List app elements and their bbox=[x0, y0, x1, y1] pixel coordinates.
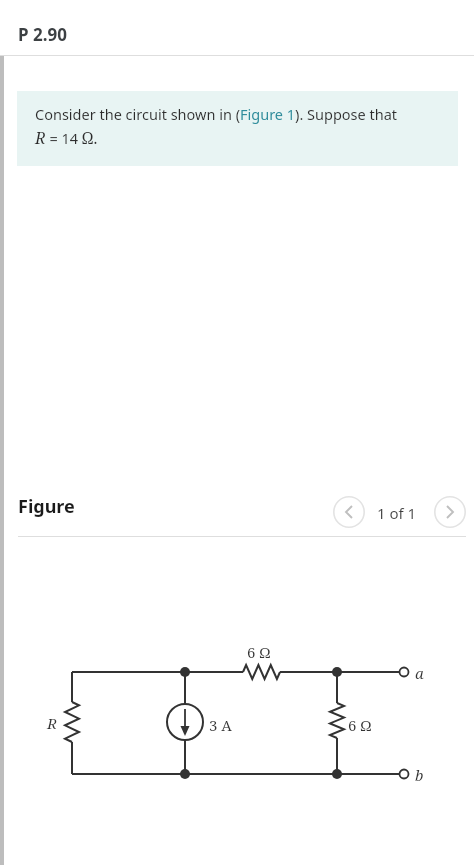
button[interactable]: Next figure bbox=[434, 496, 466, 528]
staticText: b bbox=[415, 765, 424, 785]
staticText: P 2.90 bbox=[18, 23, 67, 46]
button[interactable]: Previous figure bbox=[333, 496, 365, 528]
staticText: R = 14 Ω. bbox=[35, 127, 98, 149]
staticText: Consider the circuit shown in (Figure 1)… bbox=[35, 104, 398, 124]
staticText: a bbox=[415, 663, 424, 683]
staticText: Figure bbox=[18, 494, 75, 519]
staticText: 1 of 1 bbox=[377, 503, 417, 523]
staticText: 6 Ω bbox=[247, 642, 271, 662]
staticText: R bbox=[47, 713, 57, 733]
staticText: 6 Ω bbox=[348, 715, 372, 735]
staticText: 3 A bbox=[209, 715, 232, 735]
